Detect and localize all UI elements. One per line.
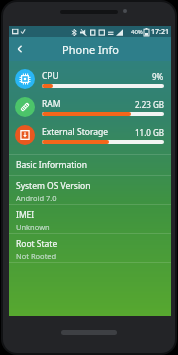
staticText: Not Rooted bbox=[16, 251, 57, 261]
staticText: Root State bbox=[16, 238, 58, 250]
button[interactable]: Root State bbox=[9, 234, 171, 262]
staticText: 11.0 GB bbox=[135, 127, 164, 138]
button[interactable]: IMEI bbox=[9, 205, 171, 233]
staticText: 2.23 GB bbox=[135, 99, 164, 110]
button[interactable]: RAM bbox=[9, 93, 171, 121]
staticText: External Storage bbox=[42, 126, 135, 138]
staticText: RAM bbox=[42, 98, 135, 110]
staticText: IMEI bbox=[16, 209, 35, 221]
staticText: Unknown bbox=[16, 222, 50, 232]
staticText: Basic Information bbox=[16, 159, 87, 171]
staticText: Phone Info bbox=[62, 42, 119, 57]
button[interactable]: Back bbox=[9, 38, 31, 60]
staticText: 17:21 bbox=[151, 27, 169, 37]
staticText: System OS Version bbox=[16, 180, 91, 192]
staticText: CPU bbox=[42, 70, 152, 82]
button[interactable]: System OS Version bbox=[9, 176, 171, 204]
staticText: 9% bbox=[152, 71, 164, 82]
button[interactable]: CPU bbox=[9, 65, 171, 93]
staticText: 40% bbox=[131, 28, 143, 36]
button[interactable]: External Storage bbox=[9, 121, 171, 149]
staticText: Android 7.0 bbox=[16, 193, 57, 203]
